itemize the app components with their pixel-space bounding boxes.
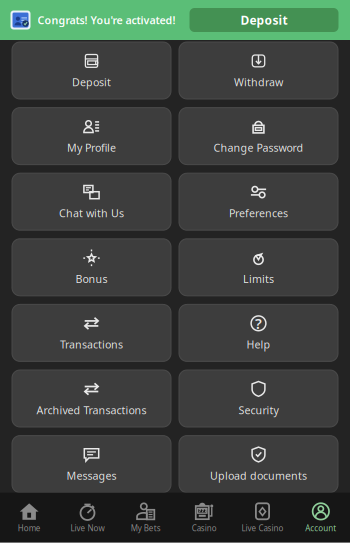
staticText: Live Now (70, 523, 104, 533)
staticText: ? (255, 314, 262, 333)
staticText: Help (246, 337, 270, 351)
button[interactable]: Casino (175, 502, 233, 533)
button[interactable]: My Bets (117, 502, 175, 533)
staticText: Security (238, 403, 278, 417)
staticText: Live Casino (241, 523, 283, 533)
button[interactable]: Withdraw (179, 42, 338, 99)
button[interactable]: Archived Transactions (12, 370, 171, 427)
staticText: My Profile (67, 140, 116, 155)
button[interactable]: Upload documents (179, 436, 338, 493)
button[interactable]: Account (292, 502, 350, 533)
staticText: Change Password (213, 140, 303, 155)
button[interactable]: Home (0, 502, 58, 533)
staticText: Chat with Us (59, 206, 124, 220)
button[interactable]: My Profile (12, 108, 171, 165)
button[interactable]: Change Password (179, 108, 338, 165)
staticText: Preferences (229, 206, 288, 220)
button[interactable]: Bonus (12, 239, 171, 296)
button[interactable]: Deposit (12, 42, 171, 99)
staticText: Limits (243, 272, 274, 286)
button[interactable]: Limits (179, 239, 338, 296)
button[interactable]: ? (179, 304, 338, 361)
staticText: Casino (192, 523, 217, 533)
button[interactable]: Preferences (179, 173, 338, 230)
staticText: Messages (66, 468, 116, 483)
button[interactable]: Live Now (58, 502, 117, 533)
staticText: Deposit (72, 75, 111, 89)
button[interactable]: Chat with Us (12, 173, 171, 230)
staticText: Congrats! You're activated! (37, 13, 175, 27)
staticText: Upload documents (210, 468, 307, 483)
staticText: Withdraw (234, 75, 283, 89)
staticText: Bonus (75, 272, 107, 286)
staticText: Home (18, 523, 41, 533)
button[interactable]: Messages (12, 436, 171, 493)
staticText: Account (305, 523, 336, 533)
button[interactable]: Transactions (12, 304, 171, 361)
staticText: Archived Transactions (36, 403, 146, 417)
staticText: Deposit (240, 12, 287, 28)
button[interactable]: Deposit (189, 8, 338, 32)
staticText: Transactions (60, 337, 123, 351)
button[interactable]: Security (179, 370, 338, 427)
staticText: My Bets (131, 523, 161, 533)
button[interactable]: Live Casino (233, 502, 292, 533)
